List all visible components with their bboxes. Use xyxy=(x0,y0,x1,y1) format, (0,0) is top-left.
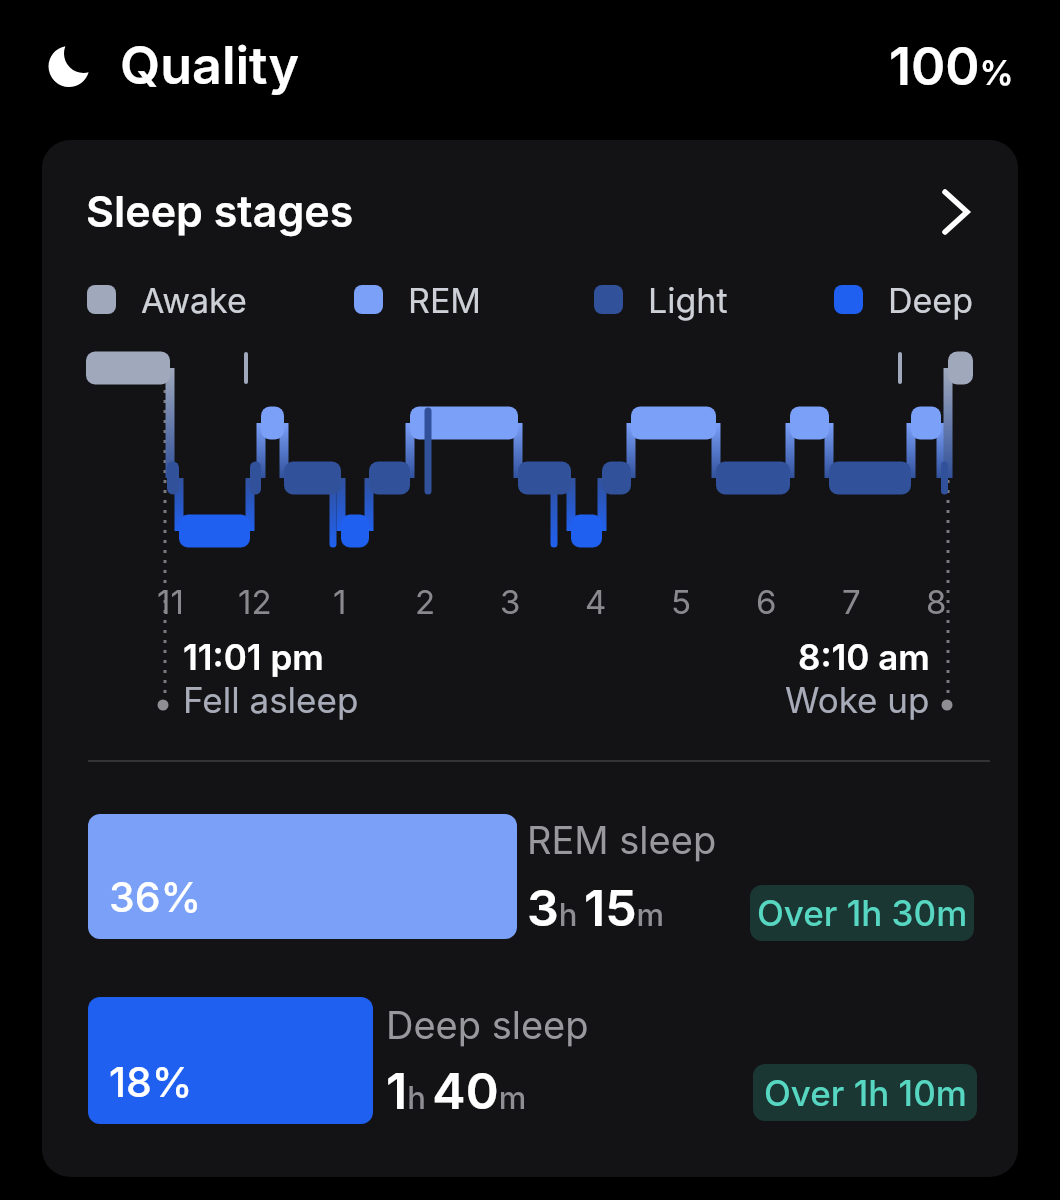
staticText: 3 xyxy=(500,582,521,622)
staticText: Deep xyxy=(888,280,973,321)
button[interactable]: Over 1h 10m xyxy=(753,1064,977,1121)
staticText: 8:10 am xyxy=(798,636,930,678)
staticText: 2 xyxy=(415,582,436,622)
staticText: 11:01 pm xyxy=(183,636,324,678)
staticText: Over 1h 30m xyxy=(757,892,968,934)
staticText: Deep sleep xyxy=(386,1002,589,1048)
button[interactable] xyxy=(42,166,1018,258)
staticText: 6 xyxy=(756,582,777,622)
staticText: Woke up xyxy=(785,679,930,721)
staticText: Light xyxy=(648,280,728,321)
staticText: REM sleep xyxy=(527,817,717,863)
staticText: 5 xyxy=(671,582,692,622)
staticText: Awake xyxy=(141,280,247,321)
staticText: Quality xyxy=(120,34,300,97)
staticText: 1h 40m xyxy=(386,1061,527,1121)
staticText: 100% xyxy=(889,35,1014,98)
staticText: 11 xyxy=(157,582,184,622)
staticText: REM xyxy=(408,280,482,321)
staticText: 4 xyxy=(585,582,607,622)
staticText: Fell asleep xyxy=(183,679,359,721)
button[interactable]: Over 1h 30m xyxy=(750,885,974,941)
staticText: 3h 15m xyxy=(527,878,665,938)
staticText: Sleep stages xyxy=(86,185,354,237)
staticText: 12 xyxy=(238,582,272,622)
staticText: 1 xyxy=(333,582,347,622)
staticText: Over 1h 10m xyxy=(764,1072,967,1114)
staticText: 8 xyxy=(926,582,947,622)
button[interactable]: 18% xyxy=(88,997,373,1124)
staticText: 36% xyxy=(109,872,202,922)
staticText: 7 xyxy=(842,582,861,622)
button[interactable]: 36% xyxy=(88,814,517,939)
staticText: 18% xyxy=(109,1057,193,1107)
